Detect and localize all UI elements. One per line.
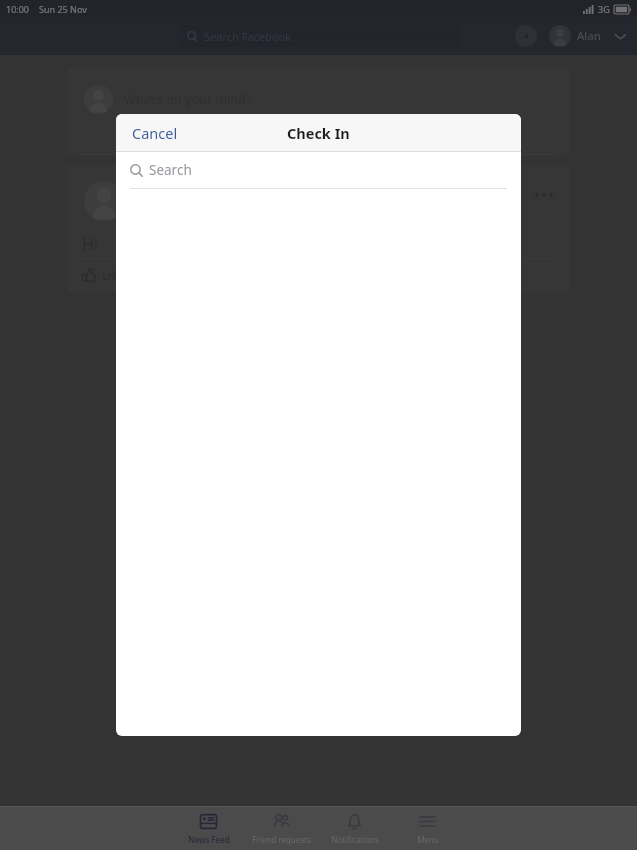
button[interactable]: Notifications [318, 807, 391, 850]
button[interactable]: Messenger [515, 25, 537, 47]
staticText: Cancel [132, 123, 178, 143]
staticText: Like [102, 267, 125, 283]
staticText: Alan [577, 28, 601, 44]
button[interactable]: More [611, 27, 629, 45]
staticText: Search [149, 161, 192, 179]
staticText: Search Facebook [204, 29, 291, 44]
button[interactable]: Like [78, 263, 129, 287]
staticText: Notifications [331, 834, 379, 845]
button[interactable]: Search [116, 152, 521, 188]
staticText: Check In [287, 123, 350, 143]
staticText: Friend requests [252, 834, 311, 845]
button[interactable]: Friend requests [245, 807, 318, 850]
staticText: 10:00 [6, 3, 30, 15]
staticText: Menu [417, 834, 439, 845]
staticText: News Feed [188, 834, 230, 845]
staticText: Hi [82, 233, 98, 255]
staticText: Sun 25 Nov [39, 3, 87, 15]
button[interactable]: Alan [549, 25, 601, 47]
button[interactable]: Search Facebook [177, 25, 461, 47]
button[interactable]: Menu [391, 807, 464, 850]
staticText: 3G [598, 3, 610, 15]
button[interactable]: Cancel [124, 117, 186, 149]
button[interactable]: News Feed [172, 807, 245, 850]
